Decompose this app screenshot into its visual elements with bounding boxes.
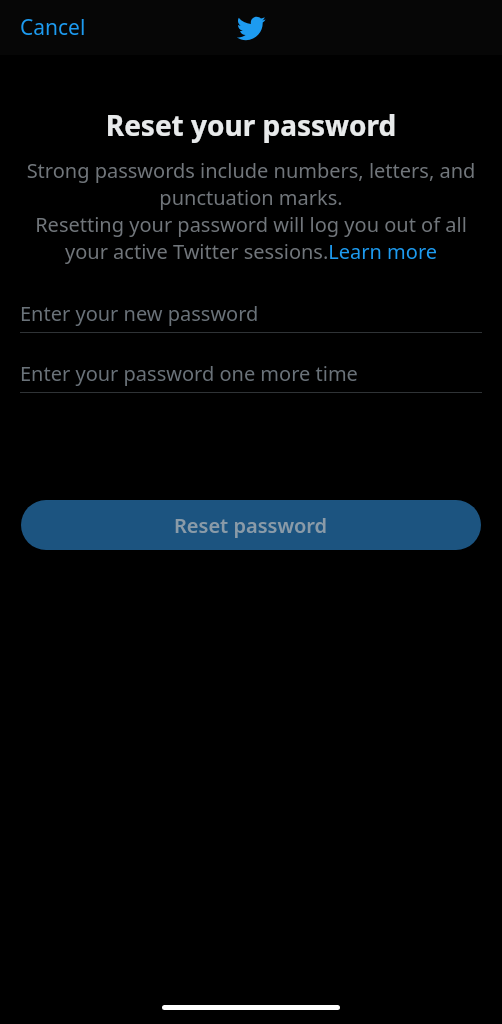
button[interactable]: Cancel — [0, 5, 100, 50]
button[interactable]: Enter your password one more time — [0, 354, 502, 393]
staticText: Reset your password — [0, 106, 502, 144]
staticText: Reset password — [174, 512, 328, 539]
staticText: Cancel — [20, 13, 86, 42]
button[interactable]: Enter your new password — [0, 294, 502, 333]
other: Twitter — [236, 13, 266, 43]
staticText: Enter your password one more time — [20, 360, 358, 387]
button[interactable]: Reset password — [21, 500, 481, 550]
staticText: Strong passwords include numbers, letter… — [26, 157, 476, 265]
staticText: Enter your new password — [20, 300, 259, 327]
